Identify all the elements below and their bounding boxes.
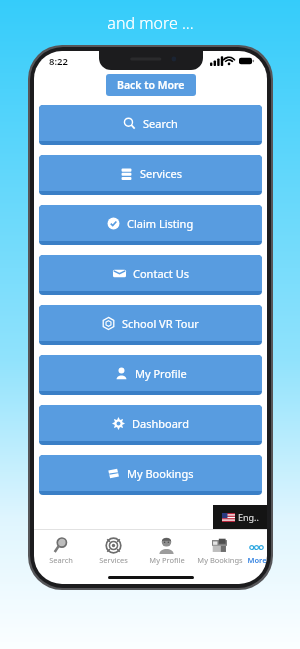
- staticText: School VR Tour: [122, 316, 199, 331]
- staticText: My Profile: [149, 555, 185, 565]
- button[interactable]: More: [246, 531, 267, 571]
- button[interactable]: My Bookings: [193, 531, 246, 571]
- staticText: and more ...: [107, 12, 194, 34]
- staticText: Services: [140, 166, 182, 181]
- staticText: More: [247, 555, 267, 565]
- staticText: Eng..: [238, 511, 259, 523]
- button[interactable]: Services: [39, 155, 262, 195]
- button[interactable]: Back to More: [106, 74, 196, 96]
- staticText: My Bookings: [197, 555, 243, 565]
- button[interactable]: Services: [87, 531, 140, 571]
- button[interactable]: My Profile: [140, 531, 193, 571]
- button[interactable]: Search: [39, 105, 262, 145]
- button[interactable]: Dashboard: [39, 405, 262, 445]
- staticText: My Bookings: [127, 466, 194, 481]
- staticText: Dashboard: [132, 416, 189, 431]
- staticText: Contact Us: [133, 266, 189, 281]
- button[interactable]: My Profile: [39, 355, 262, 395]
- button[interactable]: Claim Listing: [39, 205, 262, 245]
- staticText: My Profile: [135, 366, 187, 381]
- staticText: Back to More: [117, 78, 185, 92]
- button[interactable]: School VR Tour: [39, 305, 262, 345]
- staticText: Search: [49, 555, 73, 565]
- button[interactable]: Contact Us: [39, 255, 262, 295]
- button[interactable]: My Bookings: [39, 455, 262, 495]
- staticText: Claim Listing: [127, 216, 194, 231]
- staticText: 8:22: [49, 55, 68, 68]
- staticText: Search: [143, 116, 178, 131]
- staticText: Services: [99, 555, 128, 565]
- button[interactable]: Search: [34, 531, 87, 571]
- button[interactable]: Eng..: [213, 505, 267, 529]
